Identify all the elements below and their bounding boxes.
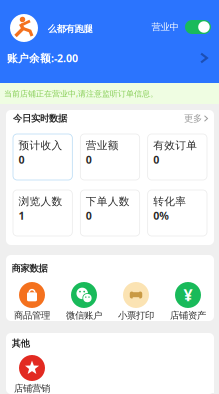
staticText: 当前店铺正在营业中,请注意监听订单信息。 [4,88,158,99]
staticText: 么都有跑腿 [47,23,92,35]
staticText: 0 [18,152,24,167]
button[interactable]: 商品管理 [6,282,58,320]
button[interactable]: 账户余额:-2.00 [0,45,219,71]
button[interactable]: 微信账户 [58,282,110,320]
staticText: 其他 [11,338,29,349]
button[interactable]: 下单人数 [80,190,140,236]
button[interactable]: 更多 [184,113,208,124]
button[interactable]: ¥ [162,282,214,320]
button[interactable]: 预计收入 [13,134,72,180]
staticText: 营业中 [151,21,178,33]
staticText: 账户余额:-2.00 [7,51,78,65]
staticText: 商品管理 [14,310,50,321]
staticText: 0 [153,152,159,167]
staticText: ¥ [183,284,192,306]
staticText: 更多 [184,113,202,124]
staticText: 转化率 [153,195,186,208]
button[interactable]: 店铺营销 [6,355,58,393]
staticText: 营业额 [86,139,119,152]
button[interactable]: 小票打印 [110,282,162,320]
staticText: 下单人数 [86,195,130,208]
staticText: 店铺营销 [14,383,50,394]
button[interactable]: 营业状态开关 [185,20,211,34]
button[interactable]: 转化率 [148,190,207,236]
staticText: 小票打印 [118,310,154,321]
staticText: 0% [153,208,169,223]
staticText: 0 [86,208,92,223]
staticText: 浏览人数 [18,195,62,208]
button[interactable]: 有效订单 [148,134,207,180]
staticText: 店铺资产 [170,310,206,321]
staticText: 有效订单 [153,139,197,152]
staticText: 1 [18,208,24,223]
button[interactable]: 浏览人数 [13,190,72,236]
staticText: 预计收入 [18,139,62,152]
staticText: 0 [86,152,92,167]
button[interactable]: 营业额 [80,134,140,180]
staticText: 微信账户 [66,310,102,321]
staticText: 今日实时数据 [13,113,67,124]
staticText: 商家数据 [11,263,47,274]
